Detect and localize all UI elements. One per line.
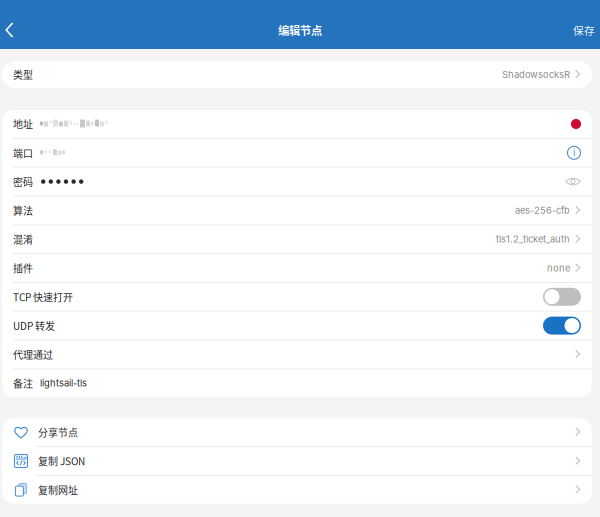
staticText: 混淆 [13, 232, 33, 246]
staticText: 编辑节点 [278, 22, 322, 38]
staticText: 端口 [13, 146, 33, 160]
button[interactable]: 保存 [559, 11, 600, 49]
button[interactable]: 算法 [2, 196, 592, 224]
staticText: 备注 [13, 376, 33, 390]
button[interactable]: TCP 快速打开 [2, 283, 592, 311]
staticText: 复制网址 [38, 483, 78, 497]
staticText: 插件 [13, 261, 33, 275]
button[interactable]: 插件 [2, 254, 592, 282]
staticText: 密码 [13, 174, 33, 189]
button[interactable]: 类型 [2, 61, 592, 88]
staticText: TCP 快速打开 [13, 290, 73, 304]
staticText: lightsail-tls [40, 378, 87, 389]
staticText: aes-256-cfb [515, 205, 570, 216]
button[interactable]: 端口 [2, 139, 592, 167]
button[interactable]: UDP 转发 [2, 312, 592, 340]
button[interactable]: 复制 JSON [2, 447, 592, 475]
button[interactable]: 混淆 [2, 225, 592, 253]
staticText: 地址 [13, 117, 33, 131]
button[interactable]: 地址 [2, 110, 592, 138]
staticText: ShadowsocksR [502, 69, 570, 80]
button[interactable]: 备注 [2, 369, 592, 397]
staticText: UDP 转发 [13, 318, 55, 333]
staticText: 分享节点 [38, 425, 78, 439]
staticText: tls1.2_ticket_auth [496, 234, 570, 245]
staticText: 代理通过 [13, 347, 53, 362]
staticText: 类型 [13, 67, 33, 82]
staticText: i [573, 147, 575, 158]
button[interactable]: 分享节点 [2, 418, 592, 446]
staticText: 算法 [13, 203, 33, 218]
staticText: 复制 JSON [38, 454, 85, 468]
staticText: 保存 [573, 22, 595, 38]
button[interactable]: 返回 [0, 11, 28, 49]
button[interactable]: 密码 [2, 168, 592, 196]
button[interactable]: 复制网址 [2, 476, 592, 504]
button[interactable]: 代理通过 [2, 340, 592, 368]
staticText: none [547, 262, 570, 274]
